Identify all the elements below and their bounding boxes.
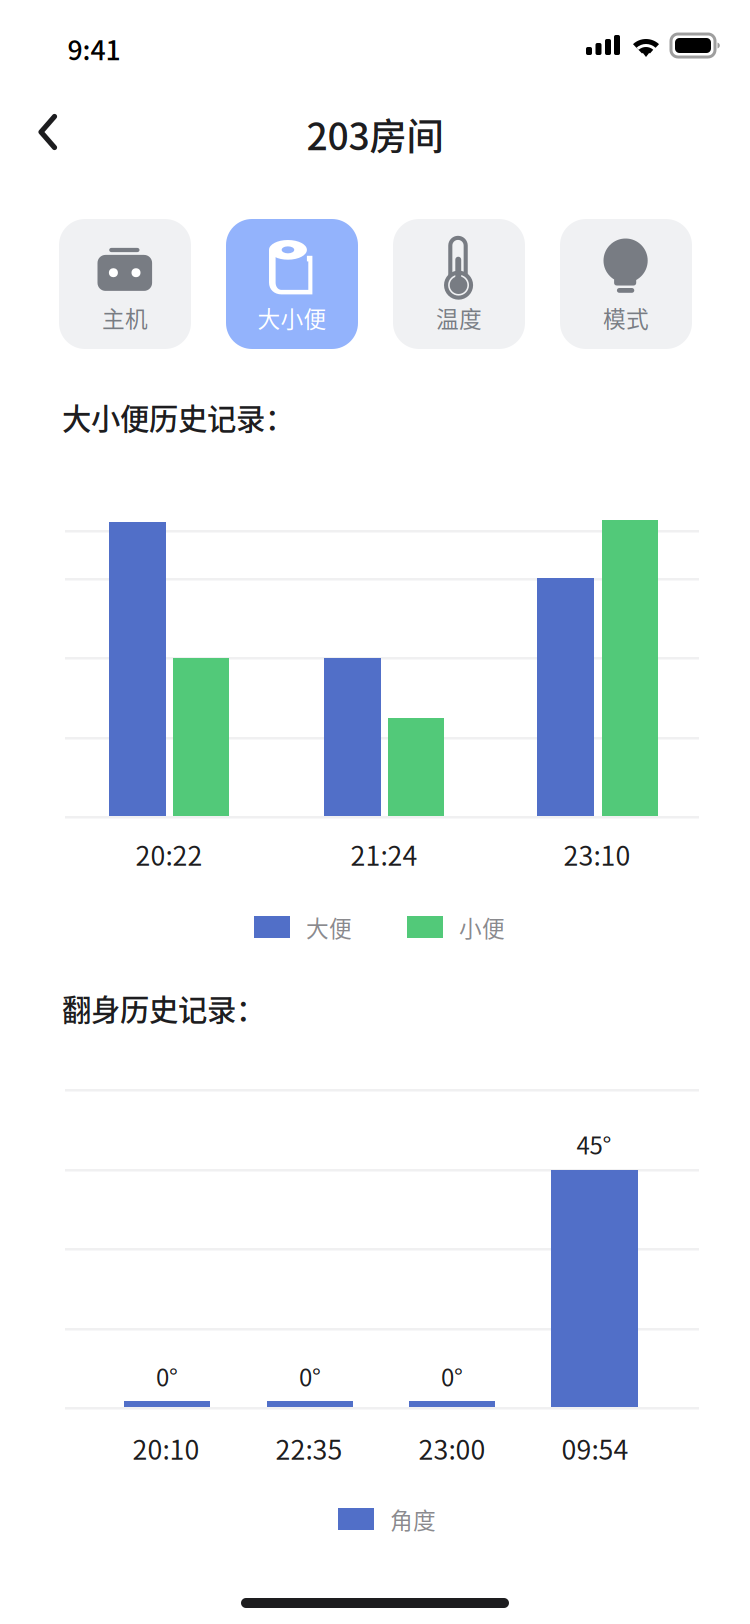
staticText: 大小便 (257, 301, 326, 334)
staticText: 203房间 (306, 107, 443, 161)
staticText: 20:10 (132, 1429, 199, 1467)
staticText: 21:24 (350, 835, 417, 873)
staticText: 0° (156, 1359, 178, 1393)
staticText: 温度 (436, 301, 482, 334)
staticText: 9:41 (67, 29, 120, 68)
staticText: 23:00 (418, 1429, 485, 1467)
staticText: 小便 (459, 911, 505, 943)
button[interactable]: 模式 (560, 219, 692, 349)
staticText: 主机 (102, 301, 148, 334)
button[interactable]: 主机 (59, 219, 191, 349)
staticText: 大小便历史记录： (62, 396, 294, 438)
staticText: 角度 (390, 1503, 436, 1535)
staticText: 09:54 (561, 1429, 628, 1467)
staticText: 翻身历史记录： (62, 987, 265, 1029)
staticText: 0° (299, 1359, 321, 1393)
button[interactable]: 温度 (393, 219, 525, 349)
staticText: 模式 (603, 301, 649, 334)
staticText: 20:22 (135, 835, 202, 873)
staticText: 大便 (306, 911, 352, 943)
staticText: 45° (576, 1127, 611, 1161)
button[interactable]: 大小便 (226, 219, 358, 349)
staticText: 0° (441, 1359, 463, 1393)
staticText: 22:35 (275, 1429, 342, 1467)
staticText: 23:10 (563, 835, 630, 873)
button[interactable]: Back (0, 86, 88, 178)
